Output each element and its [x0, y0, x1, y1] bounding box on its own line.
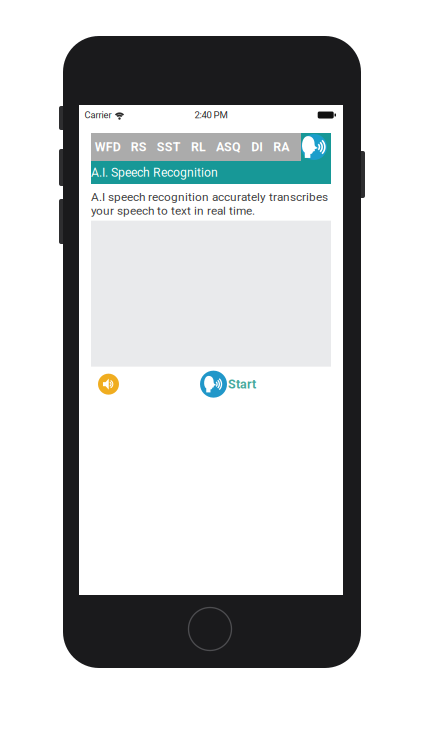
- button[interactable]: Play audio: [98, 374, 119, 395]
- button[interactable]: SST: [152, 133, 186, 161]
- button[interactable]: ASQ: [211, 133, 246, 161]
- staticText: DI: [251, 140, 263, 154]
- button[interactable]: Start: [200, 371, 256, 398]
- button[interactable]: Speech recognition: [301, 133, 331, 161]
- staticText: ASQ: [216, 140, 241, 154]
- staticText: Carrier: [84, 110, 111, 120]
- button[interactable]: DI: [246, 133, 268, 161]
- button[interactable]: RA: [268, 133, 294, 161]
- staticText: RS: [131, 140, 147, 154]
- staticText: A.I. Speech Recognition: [91, 165, 218, 180]
- staticText: RA: [273, 140, 289, 154]
- staticText: 2:40 PM: [194, 109, 227, 121]
- staticText: SST: [157, 140, 181, 154]
- staticText: A.I speech recognition accurately transc…: [91, 190, 328, 218]
- staticText: WFD: [95, 140, 121, 154]
- button[interactable]: WFD: [90, 133, 126, 161]
- button[interactable]: RS: [126, 133, 152, 161]
- staticText: Start: [228, 377, 256, 391]
- button[interactable]: RL: [186, 133, 211, 161]
- staticText: RL: [191, 140, 206, 154]
